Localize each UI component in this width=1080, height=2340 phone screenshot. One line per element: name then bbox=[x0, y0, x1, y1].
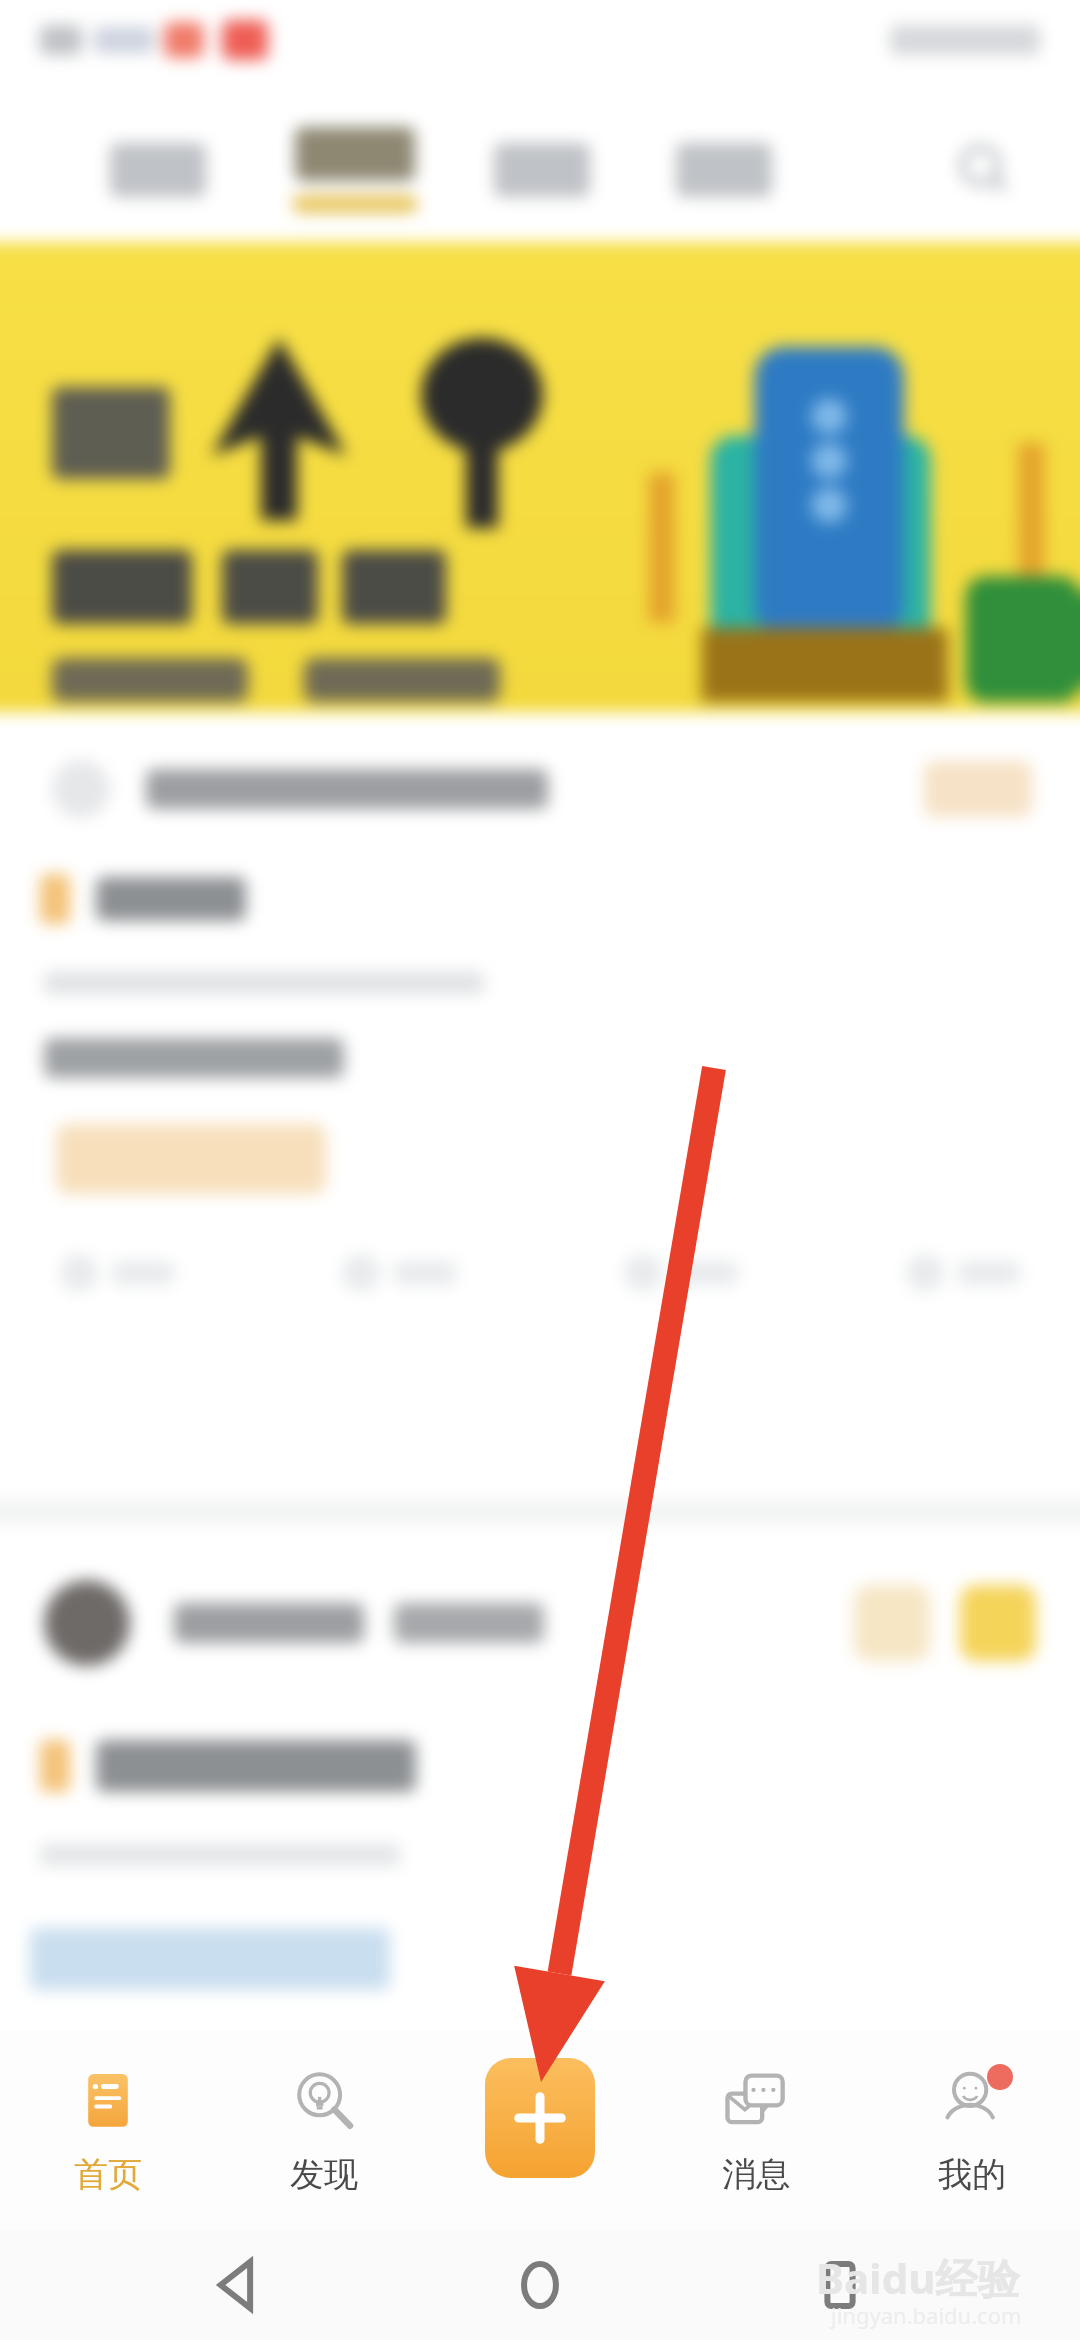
button[interactable]: 消息 bbox=[648, 2030, 864, 2230]
staticText: 首页 bbox=[74, 2153, 142, 2196]
button[interactable]: Home bbox=[480, 2230, 600, 2340]
button[interactable]: 我的 bbox=[864, 2030, 1080, 2230]
button[interactable]: 发布 bbox=[485, 2058, 595, 2178]
button[interactable]: Recents bbox=[780, 2230, 900, 2340]
staticText: Baidu经验 bbox=[816, 2249, 1020, 2306]
staticText: 我的 bbox=[938, 2153, 1006, 2196]
staticText: jingyan.baidu.com bbox=[831, 2300, 1022, 2330]
button[interactable]: 发现 bbox=[216, 2030, 432, 2230]
staticText: 消息 bbox=[722, 2153, 790, 2196]
staticText: 发现 bbox=[290, 2153, 358, 2196]
button[interactable]: Back bbox=[180, 2230, 300, 2340]
button[interactable]: 首页 bbox=[0, 2030, 216, 2230]
